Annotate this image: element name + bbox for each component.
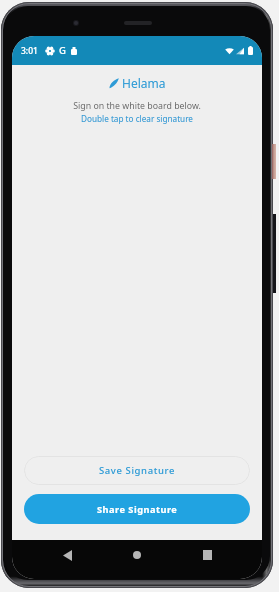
button[interactable]: Share Signature bbox=[24, 494, 250, 524]
button[interactable]: Save Signature bbox=[24, 456, 250, 485]
button[interactable]: Back bbox=[52, 540, 82, 570]
staticText: Helama bbox=[122, 75, 166, 91]
button[interactable]: Recent apps bbox=[192, 540, 222, 570]
button[interactable]: Double tap to clear signature bbox=[12, 113, 262, 124]
staticText: Save Signature bbox=[99, 464, 175, 477]
button[interactable]: Home bbox=[122, 540, 152, 570]
staticText: Share Signature bbox=[97, 503, 178, 516]
staticText: Sign on the white board below. bbox=[12, 100, 262, 112]
staticText: G bbox=[59, 44, 66, 57]
staticText: 3:01 bbox=[21, 45, 38, 57]
